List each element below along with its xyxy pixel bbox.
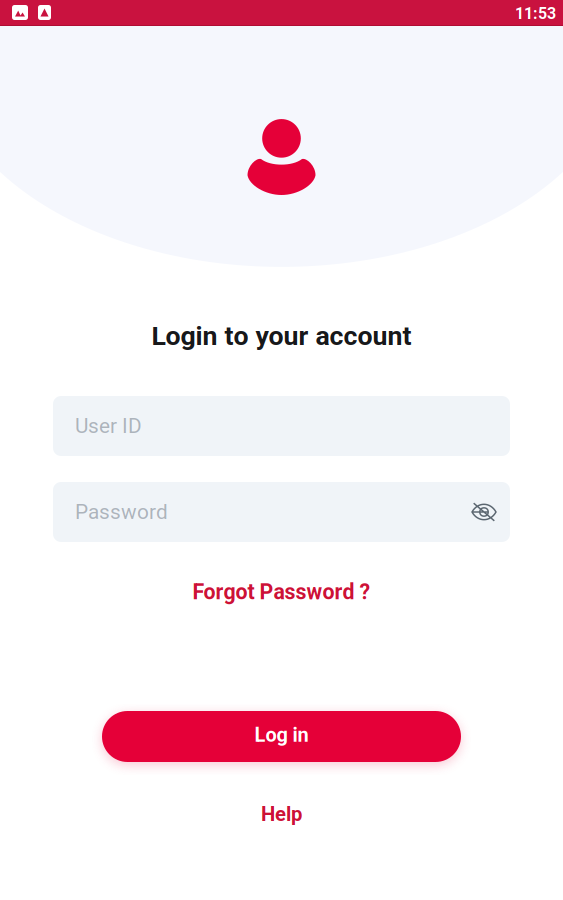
button[interactable]: Help: [241, 801, 321, 827]
staticText: User ID: [75, 414, 142, 438]
staticText: 11:53: [515, 4, 556, 23]
staticText: Login to your account: [151, 320, 411, 352]
button[interactable]: Log in: [102, 711, 461, 762]
button[interactable]: Show password: [460, 488, 508, 536]
button[interactable]: Password: [53, 482, 510, 542]
button[interactable]: Forgot Password ?: [181, 578, 381, 606]
button[interactable]: User ID: [53, 396, 510, 456]
staticText: Log in: [254, 723, 308, 747]
staticText: Forgot Password ?: [192, 579, 370, 604]
staticText: Password: [75, 500, 168, 524]
staticText: Help: [261, 802, 302, 826]
